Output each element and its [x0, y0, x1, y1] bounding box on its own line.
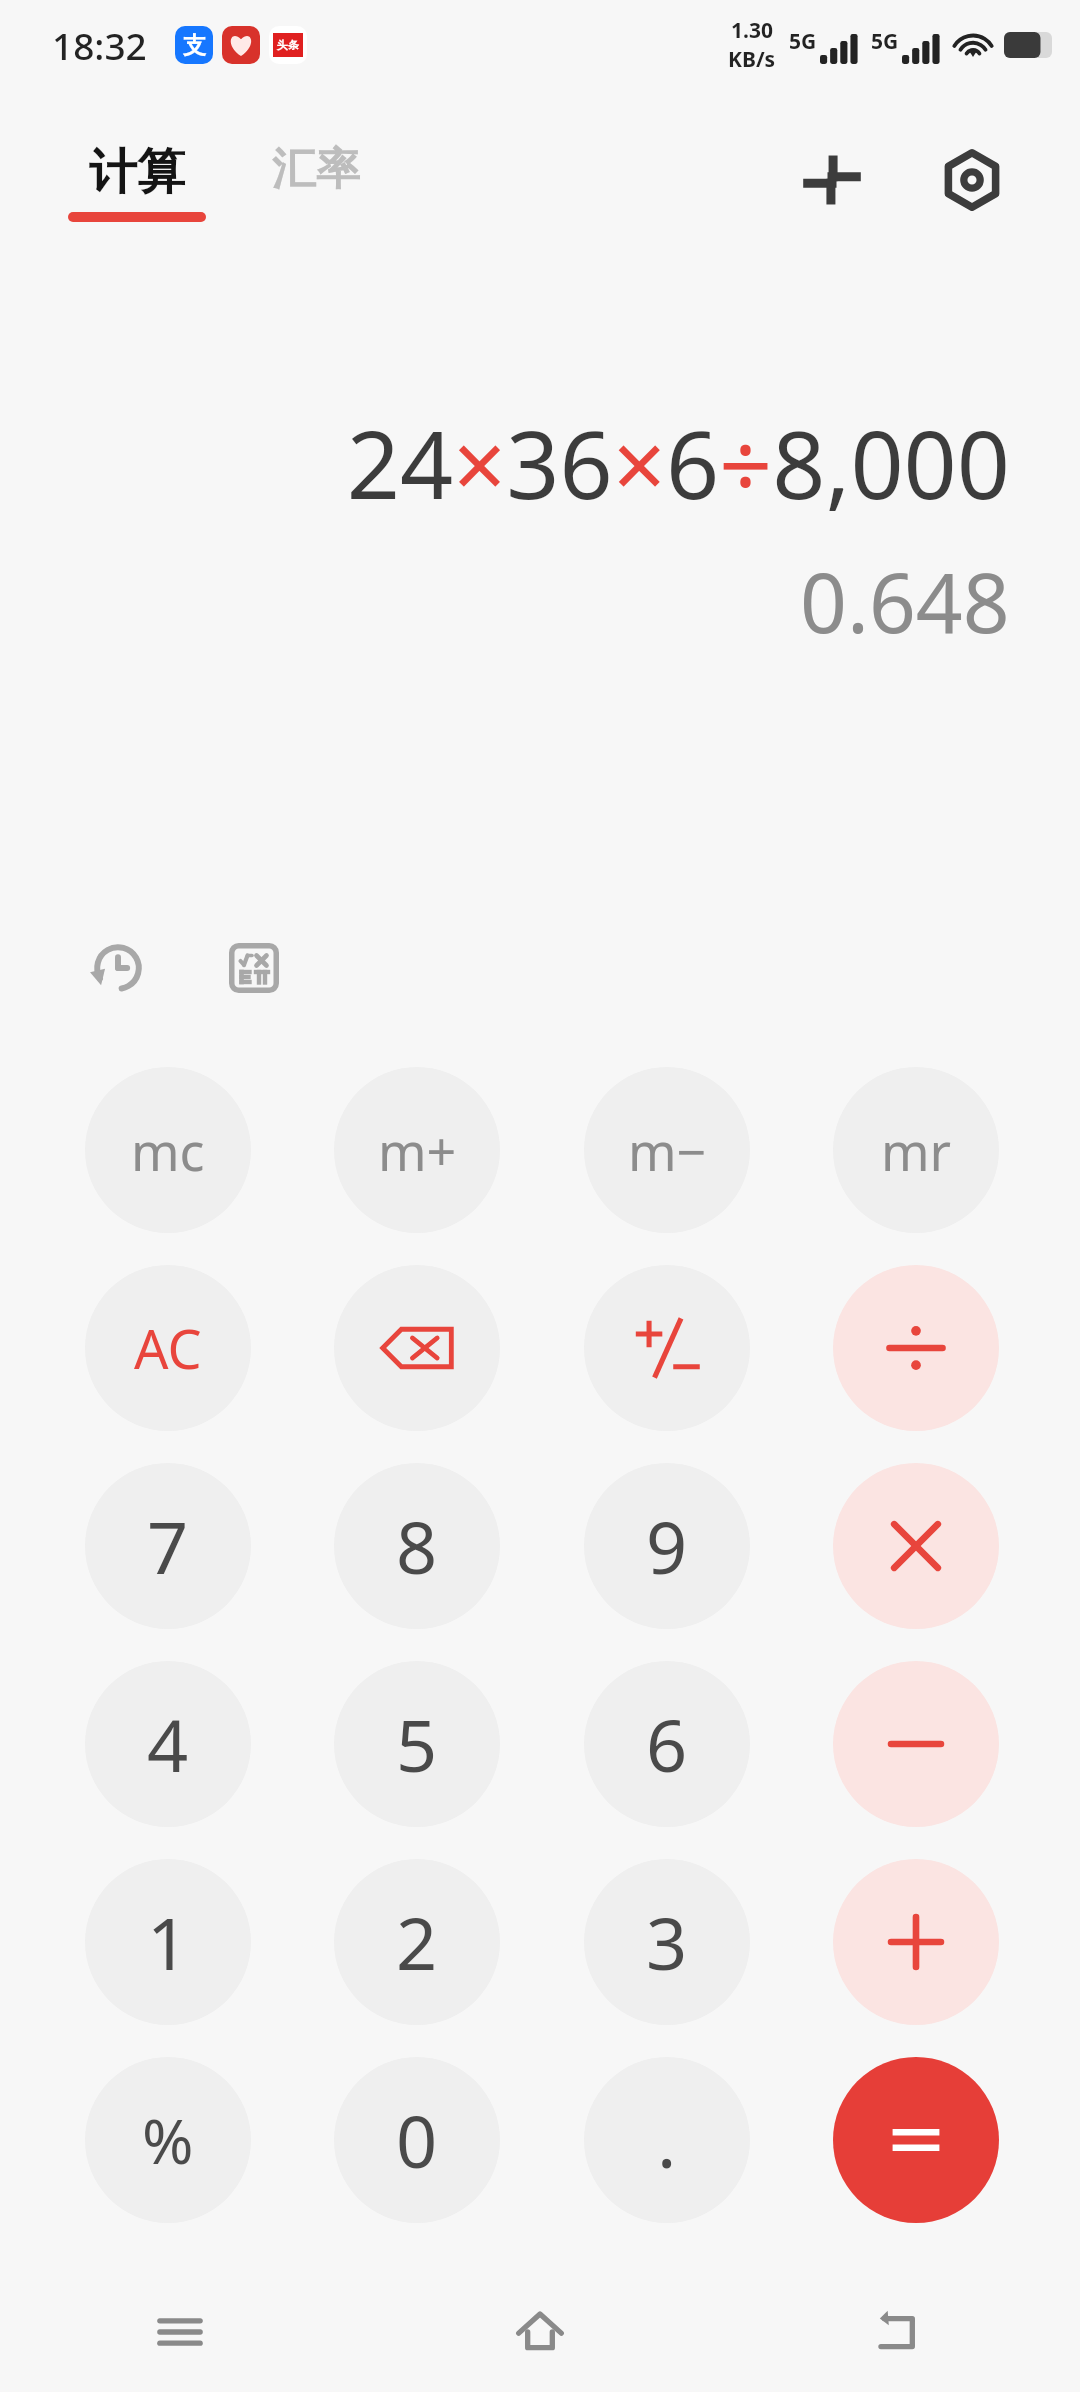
staticText: 5G	[789, 27, 817, 56]
staticText: 计算	[89, 142, 185, 202]
staticText: KB/s	[728, 45, 776, 74]
staticText: 汇率	[272, 142, 360, 197]
button[interactable]: Toggle sign	[584, 1265, 750, 1431]
button[interactable]: 9	[584, 1463, 750, 1629]
button[interactable]: 5	[334, 1661, 500, 1827]
staticText: 5	[396, 1695, 438, 1793]
button[interactable]: 6	[584, 1661, 750, 1827]
button[interactable]: 0	[334, 2057, 500, 2223]
button[interactable]: Home	[360, 2272, 720, 2392]
button[interactable]: %	[85, 2057, 251, 2223]
staticText: .	[657, 2091, 677, 2189]
staticText: 5G	[871, 27, 899, 56]
button[interactable]: 2	[334, 1859, 500, 2025]
button[interactable]: 4	[85, 1661, 251, 1827]
button[interactable]: Back	[720, 2272, 1080, 2392]
button[interactable]: mr	[833, 1067, 999, 1233]
button[interactable]: Recent apps	[0, 2272, 360, 2392]
button[interactable]: mc	[85, 1067, 251, 1233]
staticText: 2	[396, 1893, 438, 1991]
staticText: AC	[134, 1311, 202, 1385]
button[interactable]: Plus	[833, 1859, 999, 2025]
staticText: 18:32	[52, 20, 147, 70]
button[interactable]: 8	[334, 1463, 500, 1629]
staticText: 24×36×6÷8,000	[346, 400, 1010, 527]
staticText: m+	[378, 1115, 457, 1186]
button[interactable]: m−	[584, 1067, 750, 1233]
staticText: m−	[628, 1115, 707, 1186]
button[interactable]: Divide	[833, 1265, 999, 1431]
button[interactable]: Backspace	[334, 1265, 500, 1431]
button[interactable]: Collapse keypad	[784, 132, 880, 228]
staticText: 1.30	[731, 16, 773, 45]
staticText: 0.648	[800, 545, 1010, 657]
button[interactable]: Multiply	[833, 1463, 999, 1629]
staticText: 6	[646, 1695, 688, 1793]
button[interactable]: Minus	[833, 1661, 999, 1827]
staticText: 0	[396, 2091, 438, 2189]
staticText: %	[142, 2098, 194, 2182]
staticText: 8	[396, 1497, 438, 1595]
staticText: 支	[183, 31, 206, 60]
button[interactable]: History	[68, 918, 168, 1018]
staticText: 1	[147, 1893, 189, 1991]
button[interactable]: AC	[85, 1265, 251, 1431]
staticText: 3	[646, 1893, 688, 1991]
button[interactable]: Settings	[924, 132, 1020, 228]
button[interactable]: .	[584, 2057, 750, 2223]
button[interactable]: 计算	[68, 142, 206, 222]
button[interactable]: Equals	[833, 2057, 999, 2223]
staticText: 头条	[277, 38, 299, 52]
button[interactable]: m+	[334, 1067, 500, 1233]
staticText: 4	[147, 1695, 189, 1793]
staticText: mc	[131, 1115, 205, 1186]
staticText: 7	[147, 1497, 189, 1595]
button[interactable]: 7	[85, 1463, 251, 1629]
staticText: mr	[881, 1115, 952, 1186]
button[interactable]: 3	[584, 1859, 750, 2025]
staticText: 9	[646, 1497, 688, 1595]
button[interactable]: Scientific functions	[204, 918, 304, 1018]
button[interactable]: 汇率	[272, 142, 360, 197]
button[interactable]: 1	[85, 1859, 251, 2025]
